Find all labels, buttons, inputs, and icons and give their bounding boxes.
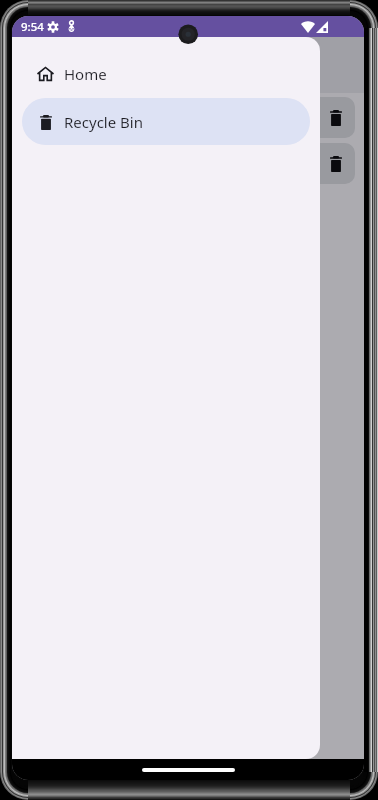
- staticText: Recycle Bin: [64, 112, 143, 132]
- button[interactable]: Delete: [21, 97, 355, 138]
- staticText: 9:54: [21, 19, 44, 35]
- button[interactable]: Delete: [21, 143, 355, 184]
- button[interactable]: Delete: [323, 105, 348, 130]
- button[interactable]: Home: [22, 50, 310, 97]
- staticText: Home: [64, 64, 107, 84]
- button[interactable]: Recycle Bin: [22, 98, 310, 145]
- button[interactable]: Delete: [323, 151, 348, 176]
